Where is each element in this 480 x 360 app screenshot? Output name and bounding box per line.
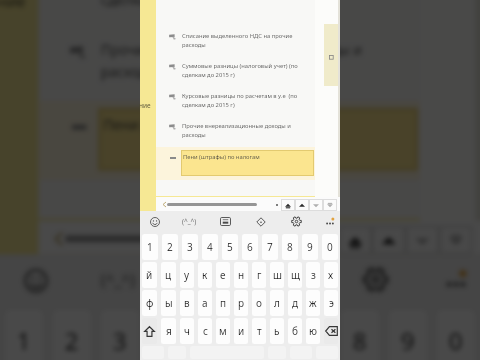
button[interactable]: щ bbox=[288, 262, 302, 288]
button[interactable]: э bbox=[324, 290, 338, 316]
button[interactable]: ы bbox=[161, 290, 176, 316]
button[interactable]: 2 bbox=[162, 234, 178, 260]
button[interactable]: Scroll down bbox=[309, 199, 323, 211]
button[interactable]: Kaomoji bbox=[175, 211, 203, 232]
button[interactable]: б bbox=[288, 318, 302, 344]
button[interactable]: 9 bbox=[389, 310, 427, 360]
button[interactable]: Прочие внереализационные доходы и расход… bbox=[156, 111, 315, 141]
button[interactable]: More options bbox=[316, 211, 344, 232]
button[interactable]: с bbox=[198, 318, 212, 344]
button[interactable]: Списание выделенного НДС на прочие расхо… bbox=[156, 21, 315, 51]
button[interactable]: Backspace bbox=[324, 318, 338, 344]
button[interactable]: 8 bbox=[282, 234, 298, 260]
button[interactable]: Emoji bbox=[2, 254, 70, 305]
button[interactable]: п bbox=[216, 290, 230, 316]
button[interactable]: ч bbox=[180, 318, 194, 344]
button[interactable]: м bbox=[216, 318, 230, 344]
staticText: в bbox=[184, 296, 190, 310]
button[interactable]: Пени (штрафы) по налогам bbox=[38, 101, 420, 180]
button[interactable]: 1 bbox=[5, 310, 43, 360]
button[interactable]: Clipboard bbox=[211, 211, 239, 232]
button[interactable]: е bbox=[216, 262, 230, 288]
button[interactable]: 3 bbox=[182, 234, 198, 260]
button[interactable]: Курсовые разницы по расчетам в у.е (по с… bbox=[38, 0, 420, 14]
button[interactable]: х bbox=[324, 262, 338, 288]
staticText: 4 bbox=[207, 240, 213, 254]
button[interactable]: Translate bbox=[257, 254, 324, 305]
button[interactable]: 5 bbox=[197, 310, 235, 360]
staticText: 1 bbox=[147, 240, 153, 254]
button[interactable]: Scroll to bottom bbox=[439, 226, 473, 254]
button[interactable]: 4 bbox=[202, 234, 218, 260]
button[interactable]: Scroll bbox=[167, 203, 257, 206]
button[interactable]: г bbox=[252, 262, 266, 288]
button[interactable]: ю bbox=[306, 318, 320, 344]
button[interactable]: й bbox=[142, 262, 157, 288]
button[interactable]: ф bbox=[142, 290, 157, 316]
button[interactable]: 6 bbox=[245, 310, 283, 360]
button[interactable]: Пени (штрафы) по налогам bbox=[156, 147, 315, 180]
button[interactable]: Scroll up bbox=[372, 226, 406, 254]
button[interactable]: 9 bbox=[302, 234, 318, 260]
button[interactable]: я bbox=[161, 318, 176, 344]
button[interactable]: ж bbox=[306, 290, 320, 316]
button[interactable]: 7 bbox=[293, 310, 331, 360]
button[interactable]: о bbox=[252, 290, 266, 316]
staticText: д bbox=[292, 296, 299, 310]
button[interactable]: 7 bbox=[262, 234, 278, 260]
button[interactable]: Emoji bbox=[141, 211, 169, 232]
staticText: Пени (штрафы) по налогам bbox=[183, 153, 260, 161]
button[interactable]: More options bbox=[422, 254, 480, 305]
button[interactable]: 0 bbox=[437, 310, 475, 360]
button[interactable]: т bbox=[252, 318, 266, 344]
button[interactable]: 1 bbox=[142, 234, 158, 260]
button[interactable]: Translate bbox=[247, 211, 275, 232]
button[interactable]: Scroll up bbox=[295, 199, 309, 211]
button[interactable]: Scroll to top bbox=[338, 226, 372, 254]
button[interactable]: Clipboard bbox=[170, 254, 238, 305]
button[interactable]: к bbox=[198, 262, 212, 288]
button[interactable]: з bbox=[306, 262, 320, 288]
button[interactable]: 3 bbox=[101, 310, 139, 360]
button[interactable]: р bbox=[234, 290, 248, 316]
button[interactable]: Kaomoji bbox=[84, 254, 151, 305]
button[interactable]: Прочие внереализационные доходы и расход… bbox=[38, 14, 420, 86]
button[interactable]: Scroll bbox=[65, 235, 281, 242]
button[interactable]: и bbox=[234, 318, 248, 344]
button[interactable]: 4 bbox=[149, 310, 187, 360]
button[interactable]: д bbox=[288, 290, 302, 316]
button[interactable]: а bbox=[198, 290, 212, 316]
button[interactable]: 0 bbox=[322, 234, 338, 260]
button[interactable]: Scroll to bottom bbox=[323, 199, 337, 211]
staticText: (^_^) bbox=[182, 217, 197, 226]
button[interactable]: 6 bbox=[242, 234, 258, 260]
button[interactable]: ь bbox=[270, 318, 284, 344]
button[interactable]: Settings bbox=[282, 211, 310, 232]
button[interactable]: 8 bbox=[341, 310, 379, 360]
button[interactable]: ш bbox=[270, 262, 284, 288]
button[interactable]: у bbox=[180, 262, 194, 288]
button[interactable]: ц bbox=[161, 262, 176, 288]
staticText: р bbox=[238, 296, 245, 310]
button[interactable]: Shift bbox=[142, 318, 157, 344]
button[interactable]: Курсовые разницы по расчетам в у.е (по с… bbox=[156, 81, 315, 111]
staticText: н bbox=[238, 268, 245, 282]
button[interactable]: Scroll to top bbox=[281, 199, 295, 211]
button[interactable]: в bbox=[180, 290, 194, 316]
button[interactable]: Суммовые разницы (налоговый учет) (по сд… bbox=[156, 51, 315, 81]
button[interactable]: н bbox=[234, 262, 248, 288]
button[interactable]: Settings bbox=[341, 254, 408, 305]
button[interactable]: 2 bbox=[53, 310, 91, 360]
button[interactable]: 5 bbox=[222, 234, 238, 260]
staticText: х bbox=[328, 268, 334, 282]
button[interactable]: л bbox=[270, 290, 284, 316]
staticText: 3 bbox=[113, 324, 127, 358]
staticText: т bbox=[257, 324, 262, 338]
